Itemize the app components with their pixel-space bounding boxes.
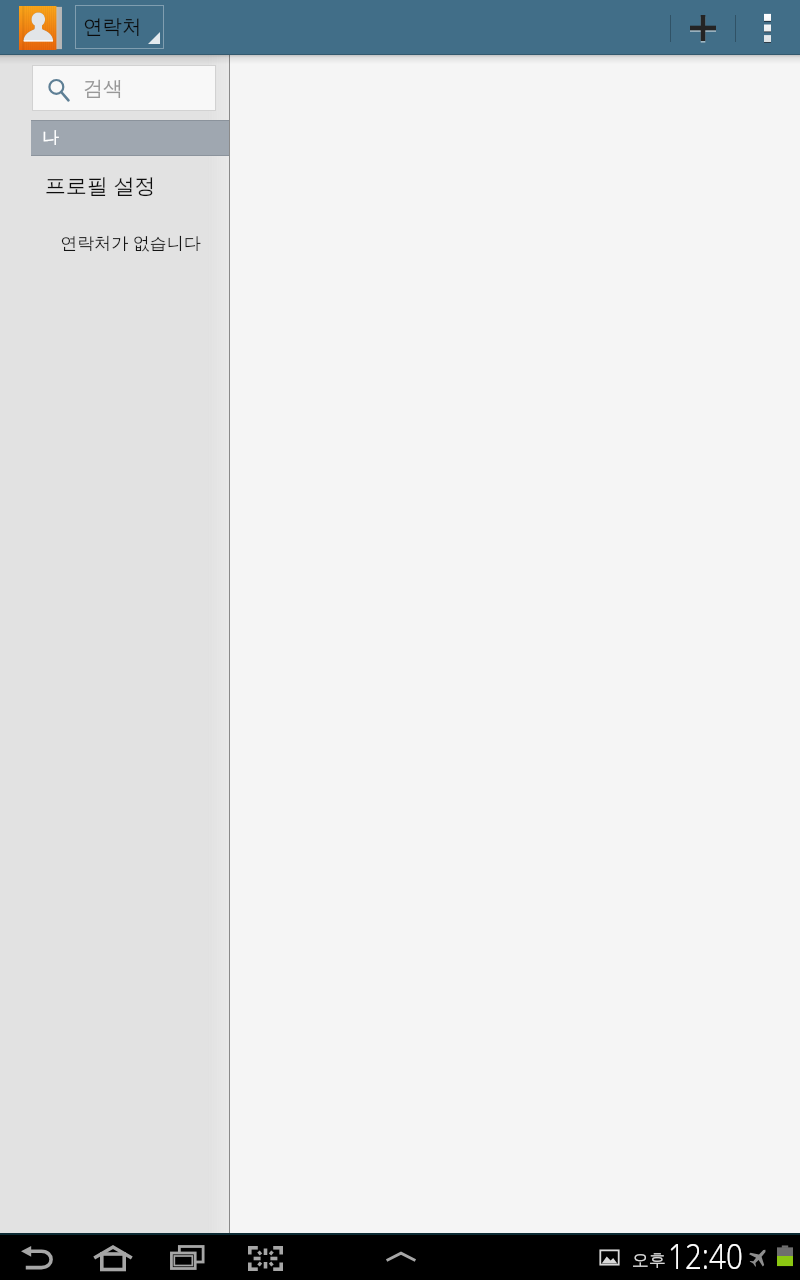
button[interactable]: 검색 xyxy=(32,65,216,111)
button[interactable]: Contacts app xyxy=(19,6,62,50)
button[interactable]: Back xyxy=(14,1233,62,1280)
button[interactable]: Screenshot xyxy=(241,1233,289,1280)
staticText: 검색 xyxy=(83,76,123,101)
button[interactable]: Add contact xyxy=(675,0,731,55)
button[interactable]: 나 xyxy=(31,120,261,156)
staticText: 나 xyxy=(42,127,59,148)
button[interactable]: Status xyxy=(592,1233,800,1280)
button[interactable]: Expand xyxy=(377,1233,425,1280)
button[interactable]: Home xyxy=(89,1233,137,1280)
button[interactable]: 프로필 설정 xyxy=(0,165,230,205)
button[interactable]: Recents xyxy=(164,1233,212,1280)
button[interactable]: More options xyxy=(740,0,796,55)
staticText: 12:40 xyxy=(668,1233,743,1279)
staticText: 연락처 xyxy=(83,14,142,39)
staticText: 오후 xyxy=(632,1250,666,1271)
staticText: 프로필 설정 xyxy=(45,171,156,200)
staticText: 연락처가 없습니다 xyxy=(32,231,229,254)
button[interactable]: 연락처 xyxy=(75,5,164,49)
